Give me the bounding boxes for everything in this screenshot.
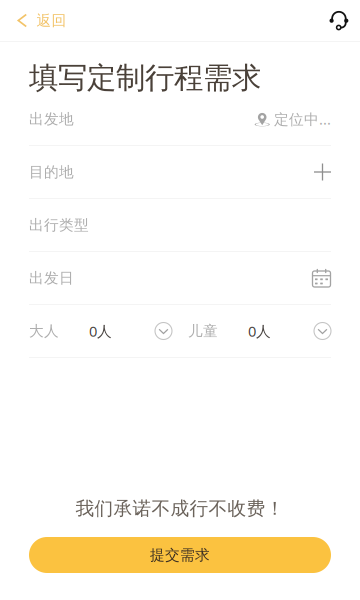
staticText: 出发地	[29, 110, 74, 128]
button[interactable]: 返回	[0, 0, 78, 41]
staticText: 儿童	[188, 322, 218, 340]
button[interactable]: 目的地	[0, 146, 360, 199]
staticText: 目的地	[29, 163, 74, 181]
staticText: 0人	[248, 321, 271, 341]
button[interactable]: 客服	[318, 0, 360, 41]
staticText: 0人	[89, 321, 112, 341]
button[interactable]: 大人	[29, 305, 172, 357]
staticText: 大人	[29, 322, 59, 340]
staticText: 出发日	[29, 269, 74, 287]
staticText: 定位中...	[274, 109, 331, 129]
staticText: 填写定制行程需求	[29, 60, 261, 96]
button[interactable]: 出发日	[0, 252, 360, 305]
button[interactable]: 提交需求	[29, 537, 331, 573]
staticText: 提交需求	[150, 546, 210, 564]
button[interactable]: 出行类型	[0, 199, 360, 252]
button[interactable]: 儿童	[188, 305, 331, 357]
staticText: 返回	[36, 11, 66, 29]
staticText: 出行类型	[29, 216, 89, 234]
staticText: 我们承诺不成行不收费！	[75, 497, 284, 520]
button[interactable]: 出发地	[0, 93, 360, 146]
